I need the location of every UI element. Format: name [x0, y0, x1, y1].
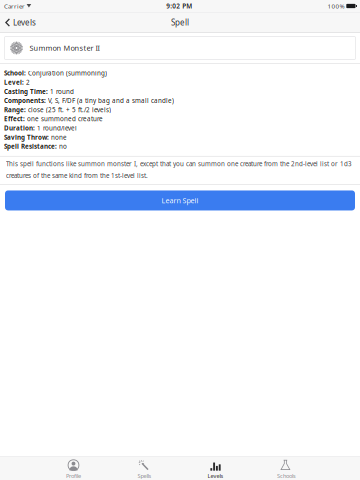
staticText: 100%	[327, 2, 344, 10]
button[interactable]: Learn Spell	[5, 190, 355, 210]
staticText: Levels	[13, 17, 36, 28]
button[interactable]: Schools	[251, 456, 322, 480]
button[interactable]: Levels	[180, 456, 251, 480]
staticText: This spell functions like summon monster…	[6, 160, 352, 180]
staticText: Schools	[277, 472, 296, 480]
button[interactable]: Profile	[38, 456, 109, 480]
staticText: Duration: 1 round/level	[4, 124, 77, 132]
staticText: Range: close (25 ft. + 5 ft./2 levels)	[4, 106, 111, 114]
staticText: Summon Monster II	[29, 43, 99, 53]
staticText: Level: 2	[4, 78, 30, 86]
staticText: Learn Spell	[161, 195, 198, 205]
staticText: Levels	[207, 472, 223, 480]
staticText: Spell Resistance: no	[4, 142, 67, 150]
staticText: Spell	[171, 17, 189, 28]
staticText: Saving Throw: none	[4, 133, 67, 141]
staticText: Casting Time: 1 round	[4, 87, 74, 96]
staticText: Profile	[66, 472, 81, 480]
button[interactable]: Spells	[109, 456, 180, 480]
staticText: 9:02 PM	[166, 2, 192, 10]
staticText: School: Conjuration (summoning)	[4, 69, 107, 77]
staticText: Effect: one summoned creature	[4, 115, 103, 123]
staticText: Spells	[137, 472, 151, 480]
button[interactable]: Levels	[0, 12, 42, 32]
staticText: Components: V, S, F/DF (a tiny bag and a…	[4, 96, 174, 105]
staticText: Carrier	[4, 2, 25, 10]
